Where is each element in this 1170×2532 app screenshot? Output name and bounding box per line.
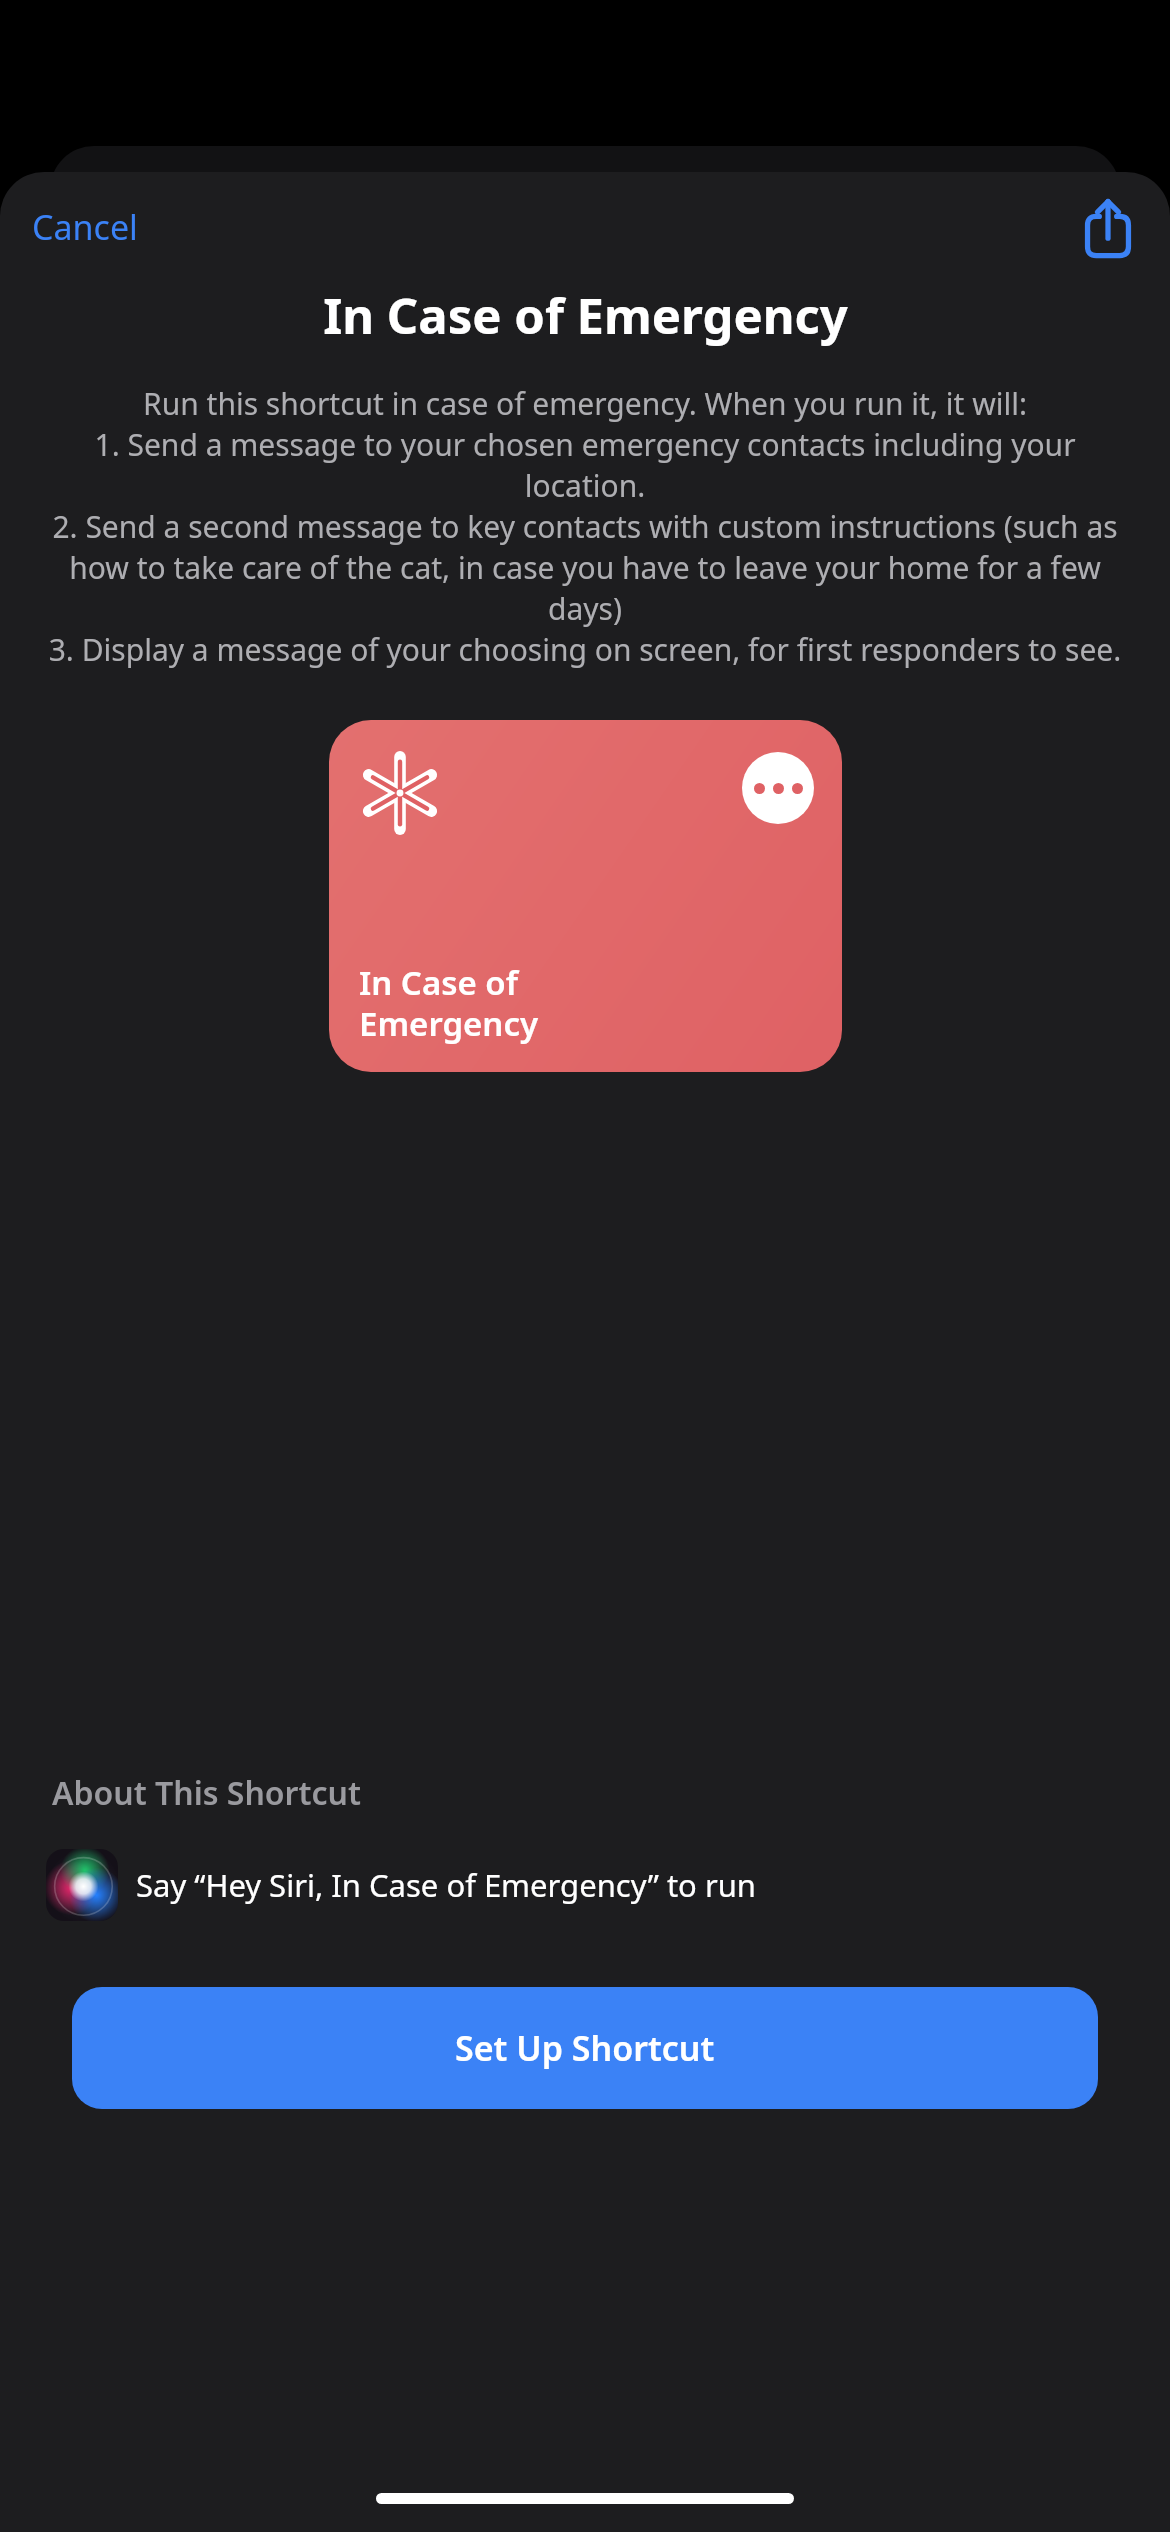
button[interactable]: Cancel xyxy=(16,194,154,260)
button[interactable]: Share xyxy=(1070,189,1146,265)
button[interactable]: Say “Hey Siri, In Case of Emergency” to … xyxy=(0,1845,1170,1925)
button[interactable]: Set Up Shortcut xyxy=(72,1987,1098,2109)
staticText: Run this shortcut in case of emergency. … xyxy=(46,383,1124,670)
staticText: About This Shortcut xyxy=(52,1771,361,1815)
staticText: In Case of Emergency xyxy=(359,960,539,1046)
staticText: In Case of Emergency xyxy=(323,282,848,349)
staticText: Say “Hey Siri, In Case of Emergency” to … xyxy=(136,1864,757,1906)
staticText: Set Up Shortcut xyxy=(455,2025,715,2071)
button[interactable]: More options xyxy=(742,752,814,824)
staticText: Cancel xyxy=(32,204,138,250)
button[interactable]: More options xyxy=(329,720,842,1072)
